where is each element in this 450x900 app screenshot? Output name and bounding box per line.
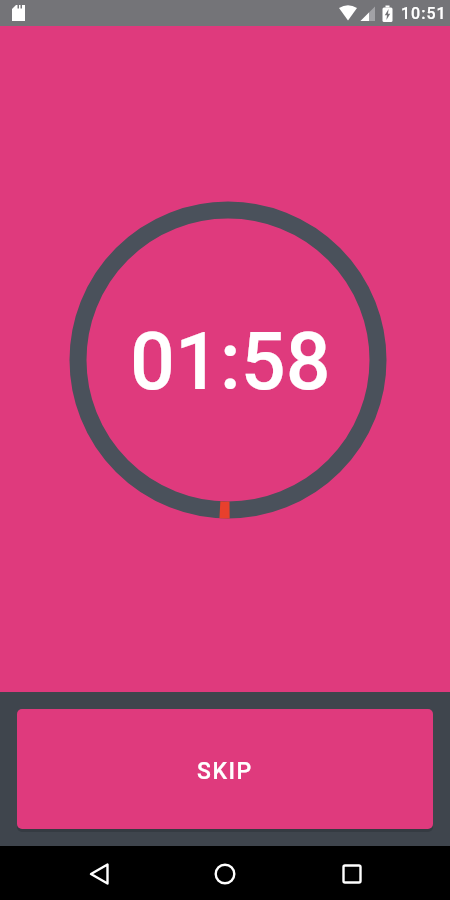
button[interactable] [150, 846, 300, 900]
button[interactable] [300, 846, 450, 900]
staticText: 10:51 [401, 4, 447, 23]
staticText: 01:58 [130, 316, 331, 409]
button[interactable]: SKIP [17, 709, 433, 829]
button[interactable] [0, 846, 150, 900]
staticText: SKIP [197, 758, 253, 785]
